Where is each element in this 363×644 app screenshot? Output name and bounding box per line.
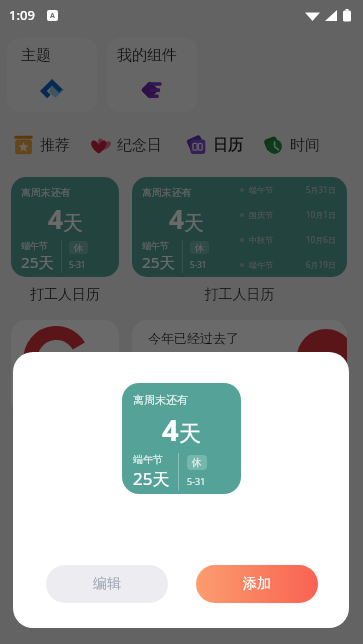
- staticText: 端午节: [21, 240, 48, 251]
- staticText: 4: [48, 201, 63, 237]
- staticText: 纪念日: [117, 136, 162, 155]
- staticText: 主题: [21, 46, 51, 65]
- staticText: 日历: [213, 136, 243, 155]
- staticText: 10月6日: [306, 234, 336, 245]
- staticText: 4: [162, 410, 179, 449]
- button[interactable]: 离周末还有: [132, 177, 347, 277]
- staticText: 休: [74, 242, 83, 253]
- staticText: 离周末还有: [142, 186, 192, 198]
- staticText: 1:09: [9, 6, 35, 24]
- staticText: 端午节: [142, 240, 169, 251]
- button[interactable]: 编辑: [46, 565, 168, 603]
- staticText: 推荐: [40, 136, 70, 155]
- staticText: 我的组件: [117, 46, 177, 65]
- staticText: 25天: [133, 467, 170, 490]
- staticText: 离周末还有: [133, 393, 188, 407]
- staticText: 4: [169, 201, 184, 237]
- staticText: 今年已经过去了: [148, 330, 239, 346]
- staticText: A: [50, 11, 55, 21]
- button[interactable]: 纪念日: [90, 135, 162, 156]
- staticText: 端午节: [133, 453, 163, 466]
- button[interactable]: 今年已经过去了: [132, 320, 347, 417]
- staticText: 休: [192, 456, 202, 469]
- staticText: 编辑: [93, 575, 121, 593]
- button[interactable]: 离周末还有: [11, 177, 119, 277]
- staticText: 中秋节: [249, 235, 273, 245]
- staticText: 5-31: [69, 259, 86, 270]
- staticText: 时间: [290, 136, 320, 155]
- button[interactable]: 日历: [186, 135, 243, 156]
- staticText: 打工人日历: [11, 286, 119, 304]
- staticText: 10月1日: [306, 209, 336, 220]
- button[interactable]: 时间: [263, 135, 320, 156]
- staticText: 国庆节: [249, 210, 273, 220]
- staticText: 添加: [243, 575, 271, 593]
- staticText: 6月19日: [306, 259, 336, 270]
- staticText: 端午节: [249, 185, 273, 195]
- button[interactable]: 添加: [196, 565, 318, 603]
- button[interactable]: 我的组件: [107, 38, 197, 112]
- staticText: 休: [195, 242, 204, 253]
- staticText: 25天: [21, 252, 54, 273]
- staticText: 5月31日: [306, 184, 336, 195]
- staticText: 5-31: [187, 475, 206, 487]
- staticText: 天: [184, 211, 204, 236]
- staticText: 5-31: [190, 259, 207, 270]
- staticText: 25天: [142, 252, 175, 273]
- staticText: 离周末还有: [21, 186, 71, 198]
- staticText: 打工人日历: [132, 286, 347, 304]
- button[interactable]: 主题: [7, 38, 97, 112]
- staticText: 端午节: [249, 260, 273, 270]
- staticText: 天: [179, 420, 201, 448]
- button[interactable]: 推荐: [13, 135, 70, 156]
- button[interactable]: [11, 320, 119, 417]
- staticText: 天: [63, 211, 83, 236]
